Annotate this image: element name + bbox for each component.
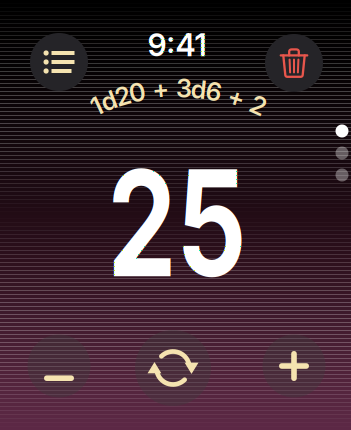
button[interactable]: Clear bbox=[265, 34, 323, 92]
staticText bbox=[245, 86, 251, 116]
button[interactable]: Roll again bbox=[135, 330, 211, 406]
staticText: + bbox=[228, 82, 245, 112]
staticText: 25 bbox=[84, 134, 270, 312]
staticText: 9:41 bbox=[147, 26, 206, 63]
button[interactable]: History bbox=[30, 33, 88, 91]
staticText: + bbox=[152, 73, 169, 104]
staticText: 6 bbox=[206, 76, 222, 107]
staticText: 1 bbox=[91, 91, 101, 121]
staticText: d bbox=[101, 85, 117, 116]
staticText: 3 bbox=[176, 73, 192, 103]
staticText: 2 bbox=[115, 81, 131, 111]
button[interactable]: Decrease bbox=[27, 334, 90, 397]
staticText: 2 bbox=[250, 90, 266, 121]
staticText: d bbox=[191, 74, 207, 104]
staticText: 0 bbox=[129, 77, 146, 108]
button[interactable]: Increase bbox=[262, 334, 325, 397]
